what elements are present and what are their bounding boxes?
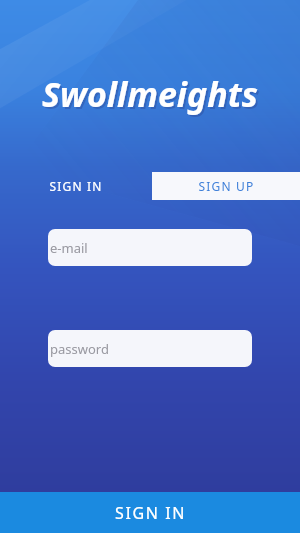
staticText: Swollmeights — [42, 71, 258, 117]
button[interactable]: SIGN IN — [0, 172, 152, 200]
staticText: SIGN UP — [198, 178, 255, 194]
staticText: SIGN IN — [115, 502, 186, 524]
button[interactable]: password — [48, 330, 252, 367]
button[interactable]: e-mail — [48, 229, 252, 266]
staticText: Swollmeights — [44, 73, 260, 119]
button[interactable]: SIGN IN — [0, 492, 300, 533]
button[interactable]: SIGN UP — [152, 172, 300, 200]
staticText: SIGN IN — [49, 178, 103, 194]
staticText: password — [50, 340, 109, 358]
staticText: e-mail — [50, 239, 88, 257]
